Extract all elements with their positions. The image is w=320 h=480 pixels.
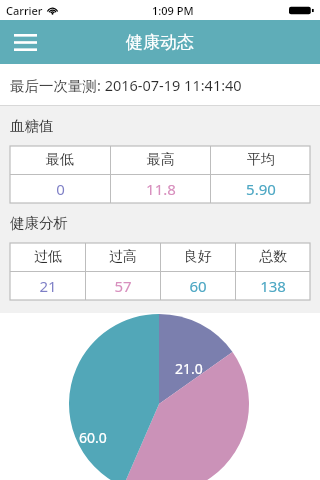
staticText: 良好 (184, 248, 212, 266)
button[interactable]: 平均 (211, 146, 310, 174)
staticText: 5.90 (246, 179, 276, 199)
staticText: 健康分析 (10, 214, 68, 232)
button[interactable]: 57 (86, 272, 160, 300)
button[interactable]: 良好 (161, 243, 235, 271)
button[interactable]: Menu (4, 21, 46, 63)
button[interactable]: 总数 (236, 243, 310, 271)
staticText: 1:09 PM (152, 3, 194, 18)
button[interactable]: 最低 (10, 146, 110, 174)
button[interactable]: 过高 (86, 243, 160, 271)
staticText: 血糖值 (10, 117, 54, 135)
staticText: 最高 (147, 151, 175, 169)
staticText: 总数 (259, 248, 287, 266)
button[interactable]: 60 (161, 272, 235, 300)
button[interactable]: 11.8 (111, 175, 210, 203)
staticText: 11.8 (146, 179, 176, 199)
staticText: 平均 (247, 151, 275, 169)
button[interactable]: 最高 (111, 146, 210, 174)
staticText: 最低 (46, 151, 74, 169)
staticText: 健康动态 (126, 32, 194, 53)
staticText: 21.0 (175, 359, 203, 378)
button[interactable]: 5.90 (211, 175, 310, 203)
staticText: Carrier (6, 3, 43, 18)
staticText: 60.0 (79, 428, 107, 447)
staticText: 过低 (34, 248, 62, 266)
staticText: 138 (260, 276, 286, 296)
button[interactable]: 21 (10, 272, 85, 300)
button[interactable]: 过低 (10, 243, 85, 271)
staticText: 过高 (109, 248, 137, 266)
staticText: 0 (56, 179, 65, 199)
staticText: 最后一次量测: 2016-07-19 11:41:40 (10, 75, 242, 95)
staticText: 21 (39, 276, 57, 296)
staticText: 60 (189, 276, 207, 296)
button[interactable]: 138 (236, 272, 310, 300)
staticText: 57 (114, 276, 132, 296)
button[interactable]: 0 (10, 175, 110, 203)
